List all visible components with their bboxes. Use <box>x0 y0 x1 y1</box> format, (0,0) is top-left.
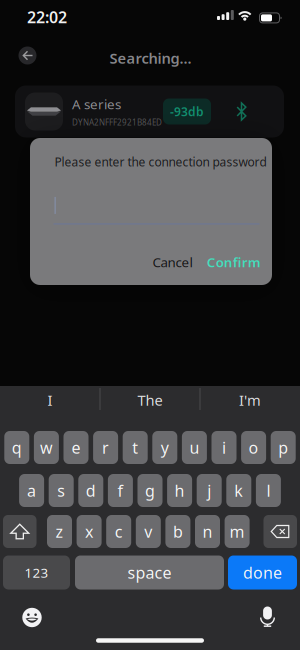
button[interactable]: x <box>77 515 102 548</box>
staticText: l <box>266 480 270 501</box>
staticText: done <box>243 562 282 583</box>
staticText: space <box>127 562 171 583</box>
button[interactable]: g <box>137 474 162 507</box>
button[interactable]: q <box>4 431 29 464</box>
button[interactable]: I <box>2 385 98 415</box>
staticText: A series <box>72 95 121 113</box>
button[interactable]: m <box>225 515 250 548</box>
staticText: y <box>161 437 169 458</box>
button[interactable]: i <box>211 431 236 464</box>
staticText: h <box>175 480 185 501</box>
button[interactable] <box>249 598 285 635</box>
staticText: s <box>57 480 65 501</box>
staticText: b <box>173 521 183 542</box>
button[interactable]: l <box>256 474 281 507</box>
button[interactable]: h <box>167 474 192 507</box>
button[interactable]: p <box>271 431 296 464</box>
button[interactable]: c <box>106 515 131 548</box>
staticText: q <box>12 437 22 458</box>
staticText: Searching... <box>109 48 191 68</box>
button[interactable]: n <box>195 515 220 548</box>
staticText: a <box>27 480 36 501</box>
staticText: c <box>115 521 123 542</box>
staticText: u <box>189 437 199 458</box>
staticText: Please enter the connection password <box>54 154 266 170</box>
button[interactable]: t <box>123 431 148 464</box>
staticText: e <box>71 437 80 458</box>
button[interactable]: j <box>197 474 222 507</box>
button[interactable]: Confirm <box>199 247 269 277</box>
staticText: j <box>207 480 211 501</box>
button[interactable]: b <box>165 515 190 548</box>
staticText: w <box>40 437 53 458</box>
staticText: I'm <box>239 390 261 410</box>
staticText: i <box>222 437 226 458</box>
button[interactable]: Cancel <box>144 247 200 277</box>
button[interactable]: y <box>152 431 177 464</box>
staticText: k <box>234 480 243 501</box>
staticText: -93db <box>170 103 204 119</box>
button[interactable] <box>263 515 297 548</box>
button[interactable]: v <box>136 515 161 548</box>
staticText: o <box>249 437 259 458</box>
button[interactable] <box>18 46 36 64</box>
staticText: The <box>137 390 162 410</box>
button[interactable]: r <box>93 431 118 464</box>
staticText: z <box>55 521 63 542</box>
button[interactable]: A series <box>15 85 284 137</box>
button[interactable]: f <box>108 474 133 507</box>
button[interactable]: done <box>228 555 297 589</box>
button[interactable]: s <box>49 474 74 507</box>
button[interactable]: z <box>47 515 72 548</box>
staticText: DYNA2NFFF2921B84ED <box>72 117 162 128</box>
staticText: x <box>85 521 93 542</box>
button[interactable]: space <box>75 555 224 589</box>
staticText: t <box>132 437 138 458</box>
staticText: n <box>202 521 212 542</box>
button[interactable]: d <box>78 474 103 507</box>
staticText: 22:02 <box>27 6 67 28</box>
staticText: I <box>47 390 52 410</box>
staticText: r <box>102 437 109 458</box>
staticText: Cancel <box>152 253 192 271</box>
button[interactable]: w <box>34 431 59 464</box>
button[interactable]: u <box>182 431 207 464</box>
button[interactable] <box>3 515 36 548</box>
button[interactable]: I'm <box>202 385 298 415</box>
staticText: f <box>117 480 123 501</box>
button[interactable]: The <box>102 385 198 415</box>
staticText: v <box>144 521 152 542</box>
staticText: d <box>86 480 96 501</box>
staticText: p <box>278 437 288 458</box>
staticText: 123 <box>24 564 48 581</box>
staticText: g <box>145 480 155 501</box>
button[interactable] <box>14 599 50 635</box>
button[interactable]: e <box>63 431 88 464</box>
button[interactable]: a <box>19 474 44 507</box>
button[interactable]: 123 <box>3 555 70 589</box>
staticText: m <box>230 521 245 542</box>
button[interactable]: o <box>241 431 266 464</box>
staticText: Confirm <box>207 253 261 271</box>
button[interactable]: k <box>226 474 251 507</box>
